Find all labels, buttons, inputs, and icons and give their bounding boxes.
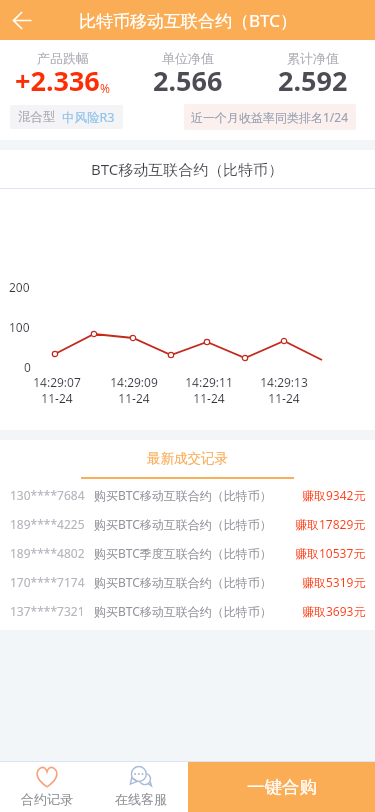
button[interactable]: 189****4225 <box>0 509 375 538</box>
staticText: 189****4802 <box>10 545 85 561</box>
button[interactable]: 一键合购 <box>188 762 375 812</box>
staticText: 189****4225 <box>10 516 85 532</box>
button[interactable]: 170****7174 <box>0 567 375 596</box>
staticText: 在线客服 <box>115 791 167 807</box>
staticText: 赚取9342元 <box>302 487 366 503</box>
staticText: 中风险R3 <box>62 109 115 126</box>
staticText: BTC移动互联合约（比特币） <box>91 159 284 179</box>
staticText: 14:29:13 <box>260 374 308 390</box>
staticText: 合约记录 <box>21 791 73 807</box>
staticText: 11-24 <box>193 390 225 406</box>
button[interactable]: Back <box>2 0 42 40</box>
staticText: 购买BTC移动互联合约（比特币） <box>94 603 272 619</box>
staticText: 100 <box>9 319 30 335</box>
staticText: 混合型 <box>18 109 56 125</box>
staticText: 最新成交记录 <box>147 450 228 467</box>
staticText: 11-24 <box>268 390 300 406</box>
button[interactable]: 189****4802 <box>0 538 375 567</box>
staticText: 近一个月收益率同类排名1/24 <box>191 109 349 125</box>
staticText: 比特币移动互联合约（BTC） <box>79 9 297 32</box>
staticText: 170****7174 <box>10 574 85 590</box>
staticText: 赚取10537元 <box>295 545 366 561</box>
staticText: 14:29:07 <box>33 374 81 390</box>
staticText: 单位净值 <box>162 50 214 66</box>
staticText: 产品跌幅 <box>37 50 89 66</box>
staticText: 11-24 <box>41 390 73 406</box>
staticText: 一键合购 <box>247 776 317 798</box>
button[interactable]: 130****7684 <box>0 480 375 509</box>
staticText: 赚取3693元 <box>302 603 366 619</box>
staticText: 购买BTC移动互联合约（比特币） <box>94 487 272 503</box>
button[interactable]: 合约记录 <box>0 762 94 812</box>
staticText: 200 <box>9 279 30 295</box>
staticText: 赚取5319元 <box>302 574 366 590</box>
button[interactable]: 在线客服 <box>94 762 188 812</box>
staticText: 137****7321 <box>10 603 85 619</box>
staticText: 购买BTC季度互联合约（比特币） <box>94 545 272 561</box>
staticText: 0 <box>24 359 31 375</box>
staticText: 购买BTC移动互联合约（比特币） <box>94 516 272 532</box>
staticText: +2.336 <box>15 62 100 99</box>
staticText: 累计净值 <box>287 50 339 66</box>
button[interactable]: 137****7321 <box>0 596 375 625</box>
staticText: 11-24 <box>118 390 150 406</box>
staticText: 2.592 <box>278 62 348 99</box>
staticText: 2.566 <box>153 62 223 99</box>
staticText: 赚取17829元 <box>295 516 366 532</box>
staticText: 130****7684 <box>10 487 85 503</box>
staticText: 14:29:11 <box>185 374 233 390</box>
staticText: % <box>100 80 110 96</box>
staticText: 购买BTC移动互联合约（比特币） <box>94 574 272 590</box>
staticText: 14:29:09 <box>110 374 158 390</box>
